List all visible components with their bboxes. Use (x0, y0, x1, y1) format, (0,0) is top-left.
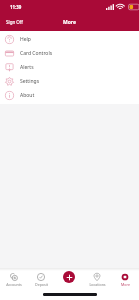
button[interactable]: Card Controls (0, 46, 139, 60)
staticText: Deposit (35, 282, 48, 287)
button[interactable]: Help (0, 32, 139, 46)
staticText: Settings (20, 78, 40, 85)
staticText: Alerts (20, 64, 34, 71)
button[interactable]: Accounts (0, 273, 27, 287)
button[interactable]: Add (63, 271, 75, 283)
button[interactable]: Sign Off (0, 18, 29, 26)
staticText: More (63, 19, 76, 26)
button[interactable]: Locations (83, 273, 111, 287)
staticText: 11:39 (10, 4, 22, 10)
staticText: About (20, 92, 35, 99)
staticText: Card Controls (20, 50, 53, 57)
staticText: Accounts (6, 282, 22, 287)
staticText: Locations (89, 282, 106, 287)
staticText: Help (20, 36, 31, 43)
button[interactable]: About (0, 88, 139, 102)
button[interactable]: Deposit (27, 273, 55, 287)
staticText: More (121, 282, 130, 287)
button[interactable]: More (111, 273, 139, 287)
button[interactable]: Settings (0, 74, 139, 88)
button[interactable]: Alerts (0, 60, 139, 74)
staticText: Sign Off (6, 19, 23, 25)
